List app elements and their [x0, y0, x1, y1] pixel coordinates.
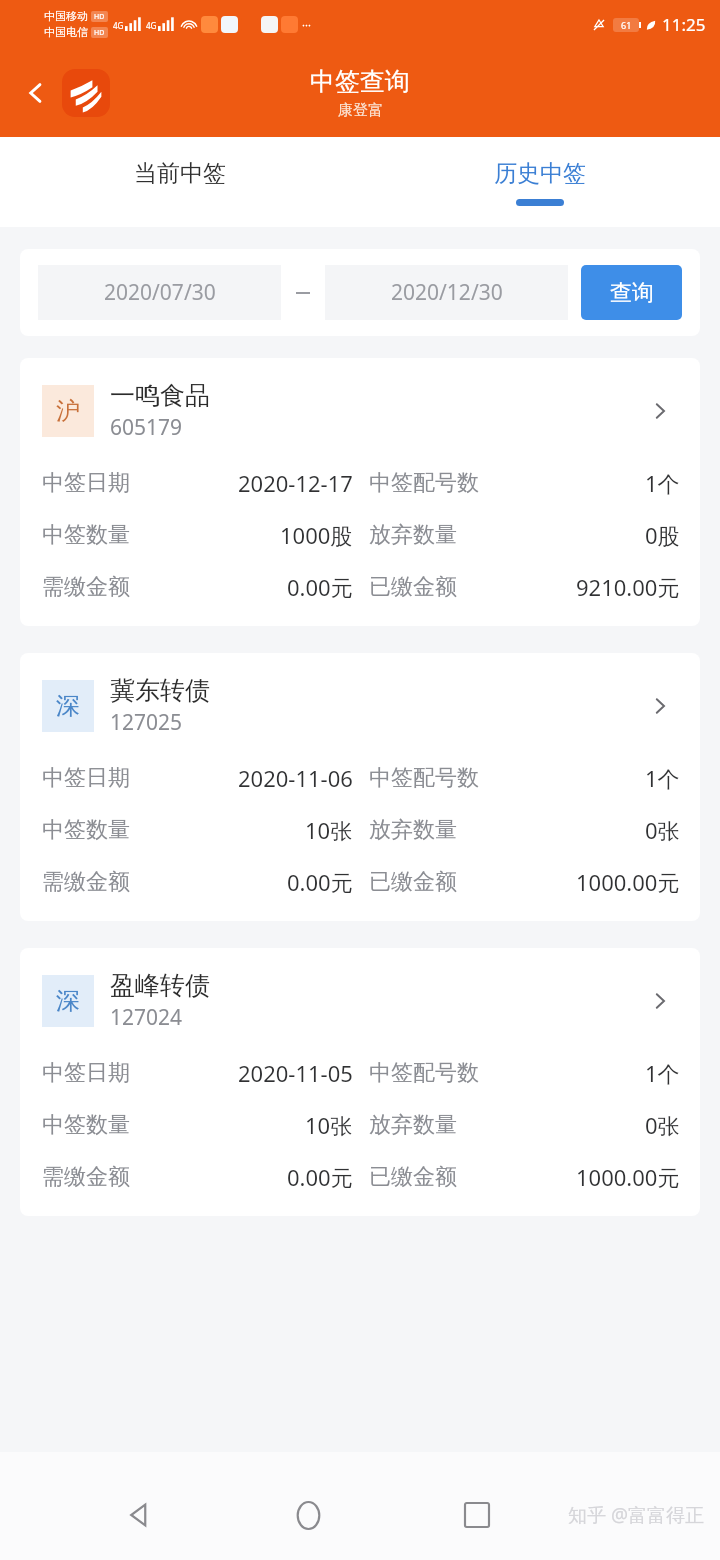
staticText: 中签日期: [42, 1059, 130, 1087]
staticText: 当前中签: [134, 159, 226, 188]
other: Details: [640, 686, 680, 726]
staticText: 1个: [645, 763, 680, 793]
staticText: 2020/07/30: [104, 278, 216, 307]
staticText: 0.00元: [287, 867, 353, 897]
button[interactable]: Back: [14, 71, 58, 115]
staticText: 4G: [146, 20, 157, 31]
button[interactable]: 2020/07/30: [38, 265, 281, 320]
staticText: 深: [56, 691, 80, 721]
staticText: 已缴金额: [369, 573, 457, 601]
staticText: 中国电信: [44, 25, 88, 39]
staticText: 中签数量: [42, 521, 130, 549]
staticText: HD: [94, 12, 105, 22]
button[interactable]: 沪: [20, 358, 700, 626]
staticText: 0.00元: [287, 572, 353, 602]
staticText: 61: [621, 19, 632, 31]
staticText: 10张: [305, 815, 353, 845]
staticText: 已缴金额: [369, 868, 457, 896]
button[interactable]: Back: [110, 1486, 168, 1544]
staticText: 深: [56, 986, 80, 1016]
staticText: 中签配号数: [369, 764, 479, 792]
staticText: 康登富: [338, 101, 383, 120]
staticText: 中签日期: [42, 469, 130, 497]
staticText: 历史中签: [494, 159, 586, 188]
staticText: 10张: [305, 1110, 353, 1140]
staticText: 1个: [645, 1058, 680, 1088]
staticText: HD: [94, 28, 105, 38]
button[interactable]: 当前中签: [0, 137, 360, 227]
staticText: 2020-11-06: [238, 763, 353, 793]
staticText: 0张: [645, 1110, 680, 1140]
staticText: 放弃数量: [369, 521, 457, 549]
button[interactable]: 深: [20, 653, 700, 921]
other: Details: [640, 391, 680, 431]
staticText: 11:25: [662, 13, 706, 36]
button[interactable]: Home: [279, 1486, 337, 1544]
staticText: 中签数量: [42, 1111, 130, 1139]
staticText: 4G: [113, 20, 124, 31]
staticText: 知乎 @富富得正: [567, 1502, 704, 1528]
staticText: 放弃数量: [369, 816, 457, 844]
staticText: 127025: [110, 708, 183, 737]
staticText: 2020-12-17: [238, 468, 353, 498]
staticText: 2020/12/30: [391, 278, 503, 307]
staticText: 605179: [110, 413, 183, 442]
staticText: 一鸣食品: [110, 380, 210, 411]
staticText: 中签配号数: [369, 469, 479, 497]
button[interactable]: Recent apps: [448, 1486, 506, 1544]
staticText: 已缴金额: [369, 1163, 457, 1191]
staticText: 沪: [56, 396, 80, 426]
staticText: 0.00元: [287, 1162, 353, 1192]
staticText: 冀东转债: [110, 675, 210, 706]
staticText: 1000股: [280, 520, 353, 550]
staticText: 查询: [610, 279, 654, 307]
button[interactable]: App logo: [62, 69, 110, 117]
staticText: 需缴金额: [42, 868, 130, 896]
staticText: 需缴金额: [42, 1163, 130, 1191]
staticText: 盈峰转债: [110, 970, 210, 1001]
staticText: 1000.00元: [576, 867, 680, 897]
other: Details: [640, 981, 680, 1021]
button[interactable]: 查询: [581, 265, 682, 320]
staticText: 0股: [645, 520, 680, 550]
staticText: 127024: [110, 1003, 183, 1032]
staticText: 中签数量: [42, 816, 130, 844]
staticText: 中签查询: [310, 66, 410, 97]
button[interactable]: 2020/12/30: [325, 265, 568, 320]
staticText: 0张: [645, 815, 680, 845]
button[interactable]: 深: [20, 948, 700, 1216]
staticText: 1000.00元: [576, 1162, 680, 1192]
staticText: 1个: [645, 468, 680, 498]
staticText: 需缴金额: [42, 573, 130, 601]
staticText: 9210.00元: [576, 572, 680, 602]
staticText: 2020-11-05: [238, 1058, 353, 1088]
staticText: 中签日期: [42, 764, 130, 792]
staticText: 中国移动: [44, 9, 88, 23]
button[interactable]: 历史中签: [360, 137, 720, 227]
staticText: ···: [302, 17, 311, 32]
staticText: 放弃数量: [369, 1111, 457, 1139]
staticText: 中签配号数: [369, 1059, 479, 1087]
